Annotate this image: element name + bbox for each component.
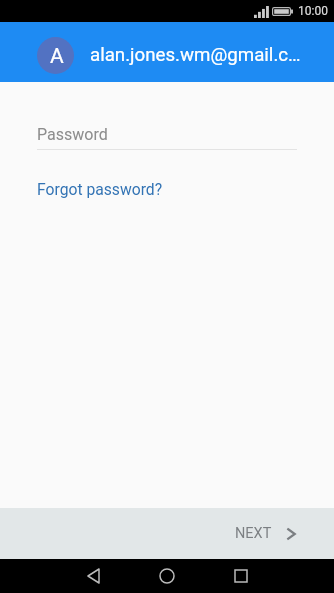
staticText: A xyxy=(50,44,64,69)
staticText: Password xyxy=(37,125,108,144)
staticText: alan.jones.wm@gmail.c… xyxy=(90,44,301,66)
button[interactable]: NEXT xyxy=(235,525,296,542)
button[interactable]: Recent apps xyxy=(225,560,257,592)
button[interactable]: Back xyxy=(77,560,109,592)
button[interactable]: Forgot password? xyxy=(37,180,163,198)
button[interactable]: Home xyxy=(151,560,183,592)
button[interactable]: Password xyxy=(0,125,334,150)
staticText: Forgot password? xyxy=(37,180,163,198)
staticText: 10:00 xyxy=(298,4,328,18)
button[interactable]: Account avatar xyxy=(37,37,74,74)
staticText: NEXT xyxy=(235,525,272,542)
